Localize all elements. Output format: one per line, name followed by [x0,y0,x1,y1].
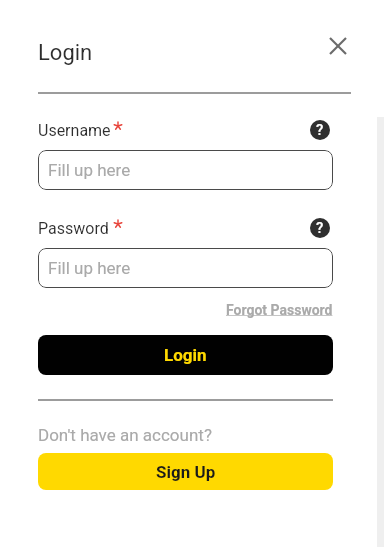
button[interactable]: Login [38,335,333,375]
staticText: Username [38,121,111,140]
staticText: Don't have an account? [38,425,212,445]
staticText: Sign Up [156,462,216,482]
button[interactable]: Close [324,32,352,60]
button[interactable]: Help [310,218,330,238]
button[interactable]: Fill up here [38,150,333,190]
button[interactable]: Sign Up [38,453,333,490]
staticText: Forgot Password [226,302,333,318]
staticText: Password [38,219,109,238]
staticText: Fill up here [48,160,131,180]
staticText: ? [316,121,324,139]
button[interactable]: Fill up here [38,248,333,288]
button[interactable]: Forgot Password [226,302,333,318]
staticText: Login [164,345,207,365]
staticText: Fill up here [48,258,131,278]
button[interactable]: Help [310,120,330,140]
staticText: ? [316,219,324,237]
staticText: Login [38,40,93,66]
